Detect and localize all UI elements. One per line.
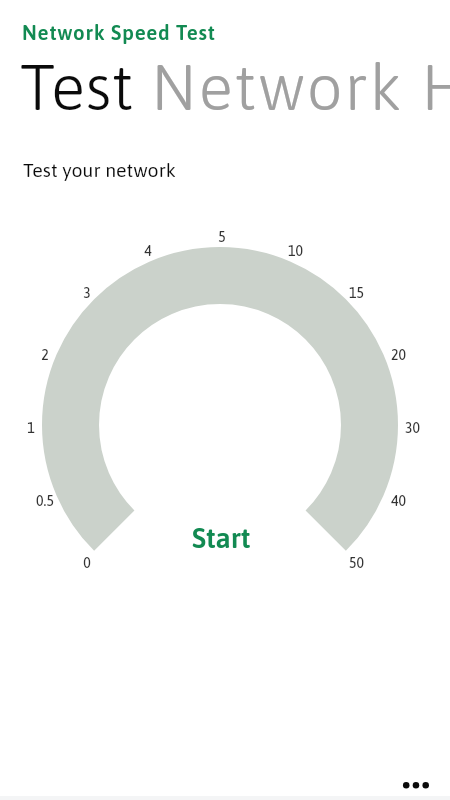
staticText: 20 [391,347,406,363]
staticText: 50 [349,555,364,571]
staticText: 3 [83,285,91,301]
staticText: 10 [288,243,303,259]
staticText: 4 [144,243,152,259]
staticText: 2 [41,347,49,363]
staticText: 1 [27,420,35,436]
staticText: 30 [405,420,420,436]
staticText: 0 [83,555,91,571]
button[interactable]: More options [386,761,446,800]
staticText: Start [192,522,251,554]
button[interactable]: Start [161,512,281,564]
button[interactable]: Network H [134,50,450,123]
staticText: 15 [349,285,364,301]
staticText: 5 [218,229,226,245]
staticText: Network H [134,50,450,123]
staticText: Test [20,50,134,123]
staticText: Test your network [23,159,177,181]
staticText: 0.5 [36,493,54,509]
button[interactable]: Test [20,50,134,123]
staticText: 40 [391,493,406,509]
staticText: Network Speed Test [22,21,216,44]
